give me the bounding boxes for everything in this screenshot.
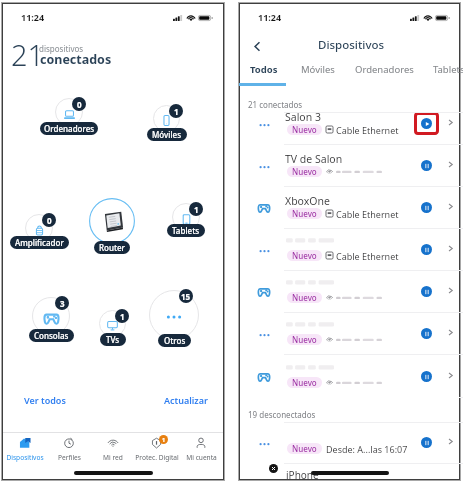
- staticText: Router: [99, 242, 125, 253]
- staticText: Nuevo: [292, 334, 317, 345]
- button[interactable]: Tablets: [422, 56, 462, 90]
- staticText: XboxOne: [285, 194, 330, 208]
- staticText: 3: [60, 298, 65, 309]
- button[interactable]: 1: [135, 433, 179, 467]
- button[interactable]: Mi red: [91, 433, 135, 467]
- button[interactable]: Amplificador: [10, 236, 69, 249]
- button[interactable]: Pause: [421, 437, 432, 448]
- staticText: Consolas: [34, 330, 69, 341]
- button[interactable]: [240, 271, 459, 313]
- staticText: Mi cuenta: [186, 453, 217, 462]
- button[interactable]: Ordenadores: [344, 56, 423, 90]
- staticText: 1: [120, 311, 125, 322]
- button[interactable]: Back: [245, 34, 269, 58]
- staticText: conectados: [40, 51, 112, 68]
- staticText: Nuevo: [292, 208, 317, 219]
- button[interactable]: Pause: [421, 286, 432, 297]
- staticText: 1: [162, 436, 166, 443]
- button[interactable]: Pause: [421, 371, 432, 382]
- button[interactable]: Pause: [421, 160, 432, 171]
- button[interactable]: Móviles: [290, 56, 344, 90]
- staticText: Tablets: [433, 63, 463, 76]
- staticText: Mi red: [103, 453, 123, 462]
- staticText: TV de Salon: [285, 152, 343, 166]
- staticText: Actualizar: [164, 394, 208, 406]
- button[interactable]: Dispositivos: [3, 433, 47, 467]
- staticText: 1: [194, 204, 199, 215]
- staticText: iPhone: [286, 468, 319, 482]
- button[interactable]: [240, 103, 459, 145]
- staticText: Tablets: [172, 225, 200, 236]
- button[interactable]: Actualizar: [159, 389, 213, 411]
- staticText: Nuevo: [292, 443, 317, 454]
- staticText: Cable Ethernet: [336, 208, 399, 219]
- button[interactable]: Router: [94, 241, 130, 254]
- button[interactable]: Perfiles: [47, 433, 91, 467]
- button[interactable]: Play: [421, 118, 432, 129]
- button[interactable]: Todos: [239, 56, 288, 90]
- button[interactable]: Otros: [158, 334, 191, 347]
- staticText: 19 desconectados: [248, 409, 316, 420]
- staticText: Nuevo: [292, 292, 317, 303]
- button[interactable]: TVs: [100, 333, 126, 346]
- button[interactable]: Pause: [421, 202, 432, 213]
- button[interactable]: Ordenadores: [40, 122, 98, 135]
- staticText: Amplificador: [15, 237, 64, 248]
- staticText: Protec. Digital: [135, 453, 179, 462]
- button[interactable]: Consolas: [29, 329, 74, 342]
- staticText: Móviles: [301, 63, 335, 76]
- staticText: Ordenadores: [44, 123, 95, 134]
- staticText: dispositivos: [39, 43, 84, 54]
- staticText: Todos: [250, 63, 278, 76]
- staticText: Salon 3: [285, 110, 321, 124]
- staticText: Otros: [164, 335, 186, 346]
- button[interactable]: Pause: [421, 244, 432, 255]
- staticText: Dispositivos: [318, 37, 385, 53]
- staticText: Nuevo: [292, 377, 317, 388]
- staticText: Nuevo: [292, 166, 317, 177]
- button[interactable]: [240, 145, 459, 187]
- button[interactable]: Móviles: [147, 128, 187, 141]
- staticText: Perfiles: [58, 453, 81, 462]
- staticText: TVs: [106, 334, 120, 345]
- button[interactable]: Mi cuenta: [179, 433, 223, 467]
- button[interactable]: Tablets: [167, 224, 205, 237]
- staticText: 1: [174, 106, 179, 117]
- button[interactable]: [240, 187, 459, 229]
- staticText: 21: [11, 35, 45, 74]
- staticText: Cable Ethernet: [336, 124, 399, 135]
- button[interactable]: [240, 422, 459, 464]
- staticText: Ordenadores: [355, 63, 414, 76]
- button[interactable]: Ver todos: [19, 389, 71, 411]
- staticText: 11:24: [21, 11, 45, 23]
- staticText: Dispositivos: [6, 453, 44, 462]
- button[interactable]: Pause: [421, 328, 432, 339]
- staticText: Desde: A...las 16:07: [326, 443, 408, 454]
- staticText: Cable Ethernet: [336, 250, 399, 261]
- staticText: Ver todos: [24, 394, 66, 406]
- button[interactable]: [240, 229, 459, 271]
- staticText: Nuevo: [292, 250, 317, 261]
- button[interactable]: [240, 313, 459, 355]
- staticText: Nuevo: [292, 124, 317, 135]
- staticText: 21 conectados: [248, 99, 303, 110]
- staticText: 15: [181, 291, 191, 302]
- staticText: Móviles: [152, 129, 182, 140]
- button[interactable]: [240, 356, 459, 398]
- staticText: 0: [47, 215, 52, 226]
- staticText: 0: [77, 99, 82, 110]
- staticText: 11:24: [258, 11, 282, 23]
